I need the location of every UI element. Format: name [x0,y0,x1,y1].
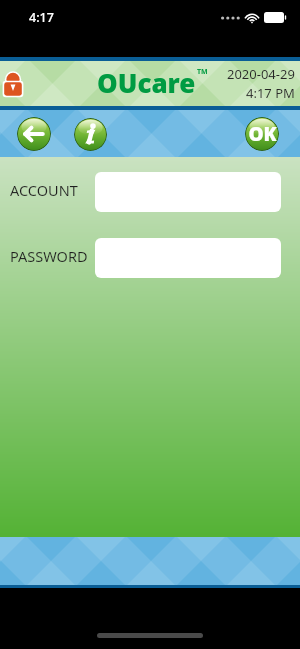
staticText: ACCOUNT [10,180,95,200]
button[interactable]: Info [74,118,107,151]
button[interactable]: Back [17,117,51,151]
staticText: OUcare [97,65,196,100]
button[interactable]: OK [245,117,279,151]
staticText: OK [248,121,277,147]
button[interactable] [95,172,281,212]
staticText: 4:17 PM [246,84,295,102]
staticText: PASSWORD [10,246,95,266]
staticText: 2020-04-29 [227,65,295,83]
button[interactable] [95,238,281,278]
button[interactable]: Lock [2,69,24,98]
staticText: 4:17 [29,9,54,26]
staticText: TM [197,67,208,77]
